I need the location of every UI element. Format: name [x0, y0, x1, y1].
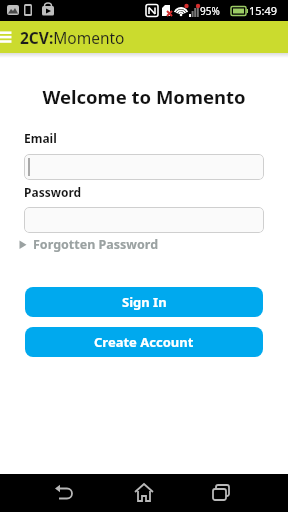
button[interactable]: Sign In: [25, 287, 263, 317]
staticText: 2CV:Momento: [20, 27, 125, 48]
staticText: Email: [24, 130, 57, 146]
button[interactable]: Create Account: [25, 327, 263, 357]
staticText: Password: [24, 184, 82, 200]
button[interactable]: [96, 474, 192, 512]
staticText: Sign In: [122, 293, 167, 311]
button[interactable]: [192, 474, 288, 512]
button[interactable]: [24, 154, 264, 180]
staticText: 95%: [200, 4, 220, 18]
staticText: Welcome to Momento: [0, 84, 288, 109]
button[interactable]: [0, 474, 96, 512]
staticText: Forgotten Password: [33, 236, 159, 253]
button[interactable]: Forgotten Password: [18, 236, 159, 253]
staticText: 15:49: [249, 3, 278, 18]
button[interactable]: [24, 207, 264, 233]
staticText: Create Account: [94, 333, 194, 351]
